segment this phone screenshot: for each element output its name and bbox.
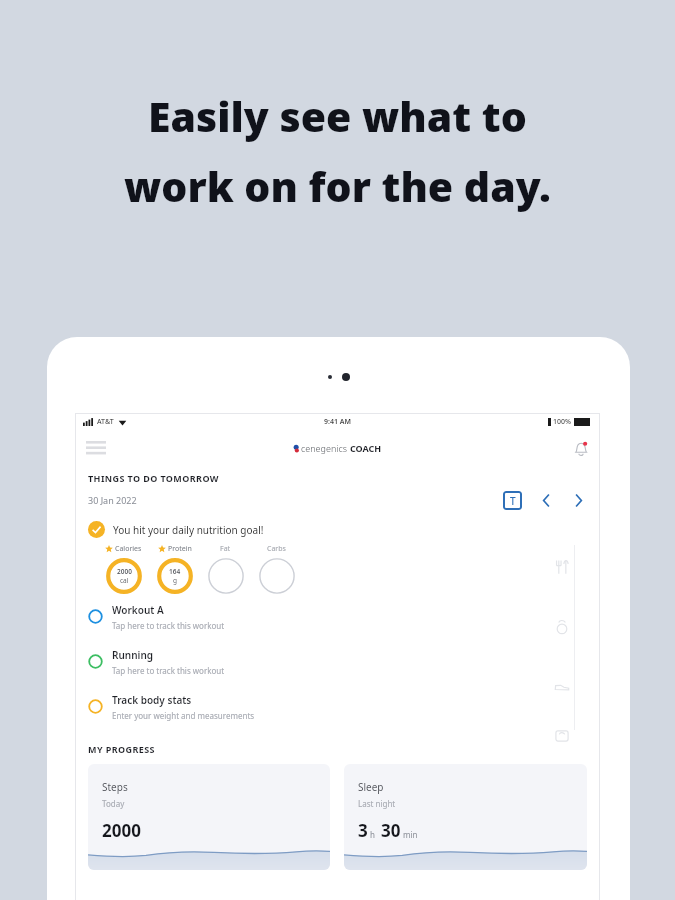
button[interactable]: Nutrition [551, 556, 573, 578]
staticText: 2000 [102, 819, 141, 842]
staticText: Protein [168, 544, 192, 554]
staticText: Track body stats [112, 693, 192, 707]
staticText: 164 [169, 567, 181, 576]
staticText: Workout A [112, 603, 164, 617]
staticText: Fat [220, 544, 231, 554]
staticText: 30 [381, 819, 401, 842]
button[interactable]: Running [551, 675, 573, 697]
staticText: THINGS TO DO TOMORROW [88, 472, 219, 484]
button[interactable]: Next day [568, 490, 588, 510]
staticText: AT&T [97, 417, 114, 427]
staticText: Sleep [358, 780, 384, 794]
staticText: 9:41 AM [324, 417, 351, 427]
staticText: cal [120, 576, 129, 585]
button[interactable]: Menu [83, 437, 109, 457]
staticText: COACH [350, 442, 382, 454]
staticText: min [403, 829, 418, 840]
button[interactable]: Sleep [344, 764, 587, 870]
staticText: Tap here to track this workout [112, 665, 225, 676]
staticText: h [370, 829, 375, 840]
staticText: work on for the day. [124, 158, 551, 214]
staticText: T [510, 494, 516, 508]
staticText: 30 Jan 2022 [88, 494, 137, 506]
button[interactable]: You hit your daily nutrition goal! [75, 519, 600, 594]
staticText: Calories [115, 544, 142, 554]
staticText: Steps [102, 780, 128, 794]
staticText: You hit your daily nutrition goal! [113, 523, 264, 537]
staticText: 3 [358, 819, 368, 842]
button[interactable]: Track body stats [75, 684, 600, 729]
button[interactable]: Running [75, 639, 600, 684]
button[interactable]: Body stats [551, 725, 573, 747]
staticText: Last night [358, 798, 396, 809]
staticText: Today [102, 798, 125, 809]
staticText: cenegenics [301, 442, 347, 454]
button[interactable]: Steps [88, 764, 330, 870]
button[interactable]: Workout A [75, 594, 600, 639]
staticText: 100% [553, 417, 571, 427]
button[interactable]: T [503, 491, 522, 510]
staticText: Easily see what to [148, 88, 527, 144]
staticText: Enter your weight and measurements [112, 710, 255, 721]
staticText: Tap here to track this workout [112, 620, 225, 631]
staticText: 2000 [117, 567, 132, 576]
staticText: Carbs [267, 544, 286, 554]
staticText: Running [112, 648, 154, 662]
button[interactable]: Notifications [570, 438, 592, 460]
staticText: MY PROGRESS [88, 743, 155, 755]
button[interactable]: Workout [551, 616, 573, 638]
button[interactable]: Previous day [536, 490, 556, 510]
staticText: g [173, 576, 177, 585]
